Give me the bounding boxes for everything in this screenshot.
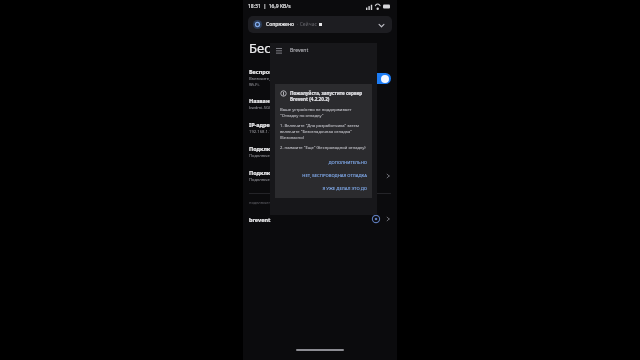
staticText: IP-адрес [249,121,273,128]
staticText: Название сети [249,97,291,104]
staticText: bwdmi-5GHz-net [249,105,283,111]
staticText: Включите, чтобы видеть [249,76,299,82]
button[interactable]: brevent [243,211,397,227]
staticText: Беспроводные сети [249,39,373,57]
staticText: brevent [249,216,271,223]
staticText: Wi-Fi. [249,82,260,88]
button[interactable]: Название сети [243,92,397,116]
button[interactable]: Беспроводные сети [243,64,397,92]
staticText: Пожалуйста, запустите сервер Brevent (4.… [290,90,367,102]
button[interactable]: IP-адрес [243,116,397,140]
button[interactable]: НЕТ, БЕСПРОВОДНАЯ ОТЛАДКА [280,173,367,179]
staticText: 192.168.1.117 [249,129,277,135]
staticText: Подключено, отлично [249,153,294,159]
button[interactable]: ДОПОЛНИТЕЛЬНО [280,160,367,166]
staticText: 2. нажмите "Eще" (беспроводной отладку) [280,145,366,151]
button[interactable]: Wireless networks toggle [371,73,391,84]
button[interactable]: Expand [375,19,387,31]
staticText: Беспроводные сети [249,68,305,75]
button[interactable]: Подключение [243,140,397,164]
button[interactable]: Settings [371,214,381,224]
button[interactable]: Menu [274,46,284,56]
staticText: Подключение [249,145,289,152]
staticText: Подключённые устройства [249,169,327,176]
staticText: подключение к сети [249,200,289,205]
staticText: Подключено 3 устройства [249,177,302,183]
staticText: Я УЖЕ ДЕЛАЛ ЭТО ДО [322,186,367,192]
staticText: НЕТ, БЕСПРОВОДНАЯ ОТЛАДКА [302,173,367,179]
button[interactable]: Сопряжено [248,16,392,33]
staticText: ДОПОЛНИТЕЛЬНО [328,160,367,166]
button[interactable]: Подключённые устройства [243,164,397,188]
button[interactable]: Я УЖЕ ДЕЛАЛ ЭТО ДО [280,186,367,192]
staticText: Brevent [290,47,309,54]
staticText: 1. Включите "Для разработчика" затем вкл… [280,123,367,141]
staticText: Сопряжено [266,21,295,28]
staticText: · Сейчас [297,21,317,28]
staticText: 18:31 | 16,9 KB/s [248,3,291,10]
staticText: Ваше устройство не поддерживает "Отладку… [280,107,367,119]
